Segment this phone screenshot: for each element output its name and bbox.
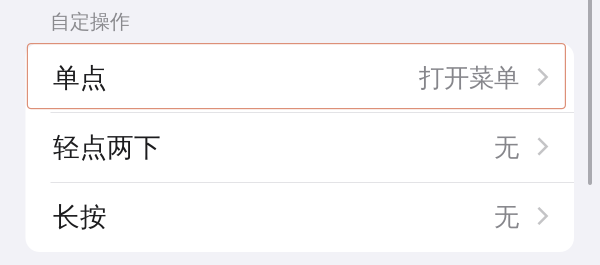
- button[interactable]: 轻点两下: [25, 113, 574, 182]
- staticText: 自定操作: [50, 9, 130, 34]
- staticText: 轻点两下: [53, 131, 161, 164]
- staticText: 打开菜单: [419, 62, 519, 93]
- staticText: 无: [494, 132, 519, 163]
- staticText: 单点: [53, 62, 107, 94]
- staticText: 无: [494, 201, 519, 232]
- staticText: 长按: [53, 201, 107, 233]
- button[interactable]: 单点: [25, 43, 574, 113]
- button[interactable]: 长按: [25, 182, 574, 252]
